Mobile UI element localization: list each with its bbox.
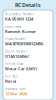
staticText: Petrol — [5, 78, 16, 84]
staticText: MA3EYD81S00123456 — [5, 41, 43, 46]
staticText: Chassis Number — [5, 37, 26, 41]
staticText: 12 Mar 2024 — [5, 91, 27, 96]
staticText: Insurance Upto — [5, 87, 26, 91]
staticText: Registration Number — [5, 12, 34, 16]
staticText: KA 05 MH 1234 — [5, 16, 33, 21]
staticText: Ramesh Kumar — [5, 29, 36, 34]
staticText: Fuel Type — [5, 75, 18, 78]
staticText: Vehicle Class — [5, 62, 23, 66]
staticText: Motor Car (LMV) — [5, 66, 37, 71]
staticText: Engine Number — [5, 50, 27, 53]
staticText: RC Details — [15, 1, 41, 9]
staticText: Owner Name — [5, 25, 22, 28]
staticText: D13A1234567 — [5, 54, 29, 59]
